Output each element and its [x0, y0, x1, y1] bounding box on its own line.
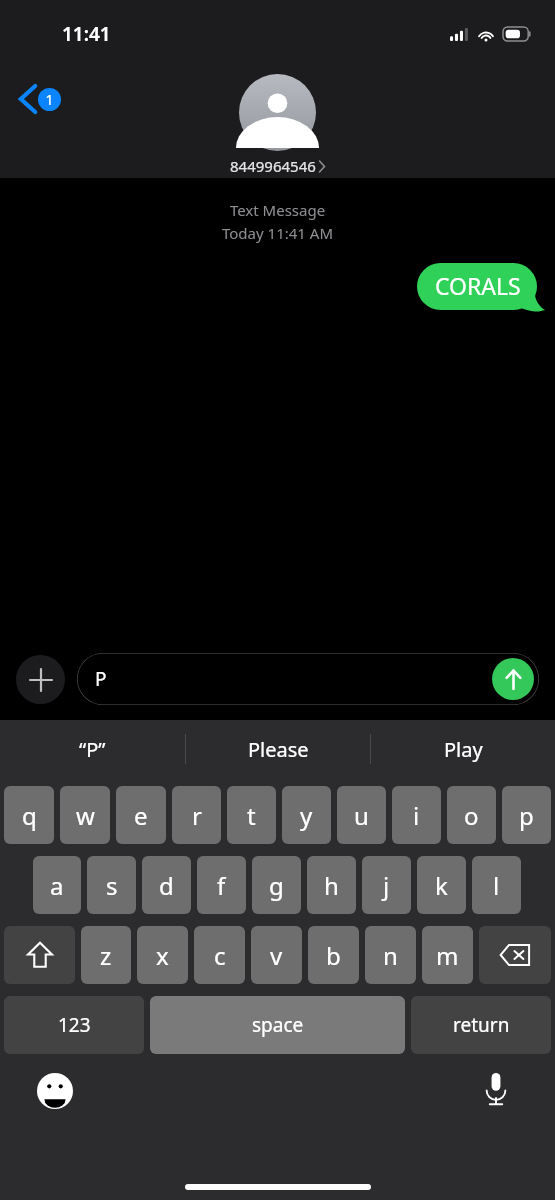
button[interactable]: x — [137, 926, 188, 984]
button[interactable]: 8449964546 — [230, 74, 325, 176]
staticText: j — [383, 869, 390, 902]
button[interactable]: Add attachment — [16, 655, 65, 704]
staticText: CORALS — [435, 270, 521, 301]
button[interactable]: h — [307, 856, 356, 914]
staticText: a — [50, 869, 64, 902]
button[interactable]: p — [502, 786, 551, 844]
staticText: y — [300, 799, 313, 832]
button[interactable]: Shift — [4, 926, 75, 984]
button[interactable]: z — [81, 926, 131, 984]
button[interactable]: e — [116, 786, 166, 844]
button[interactable]: b — [308, 926, 359, 984]
staticText: v — [270, 939, 283, 972]
staticText: f — [217, 869, 226, 902]
button[interactable]: l — [472, 856, 521, 914]
button[interactable]: y — [282, 786, 331, 844]
staticText: s — [106, 869, 118, 902]
button[interactable]: space — [150, 996, 405, 1054]
staticText: Please — [248, 736, 309, 763]
button[interactable]: j — [362, 856, 411, 914]
button[interactable]: r — [172, 786, 221, 844]
button[interactable]: v — [251, 926, 302, 984]
staticText: g — [269, 869, 284, 902]
button[interactable]: Send — [492, 658, 534, 700]
button[interactable]: g — [252, 856, 301, 914]
staticText: return — [453, 1012, 510, 1038]
staticText: t — [247, 799, 256, 832]
staticText: 8449964546 — [230, 156, 316, 176]
staticText: 1 — [45, 90, 54, 109]
staticText: u — [354, 799, 369, 832]
button[interactable]: f — [197, 856, 246, 914]
staticText: c — [214, 939, 226, 972]
staticText: Today 11:41 AM — [0, 223, 555, 243]
button[interactable]: d — [142, 856, 191, 914]
staticText: Text Message — [0, 200, 555, 220]
staticText: P — [95, 666, 107, 692]
staticText: b — [326, 939, 341, 972]
staticText: i — [413, 799, 420, 832]
button[interactable]: Emoji — [36, 1072, 74, 1110]
button[interactable]: u — [337, 786, 386, 844]
staticText: h — [324, 869, 339, 902]
button[interactable]: Backspace — [479, 926, 551, 984]
staticText: 11:41 — [62, 21, 111, 47]
button[interactable]: P — [77, 653, 539, 705]
staticText: q — [22, 799, 37, 832]
staticText: o — [464, 799, 479, 832]
button[interactable]: CORALS — [417, 263, 545, 310]
staticText: z — [100, 939, 112, 972]
staticText: Play — [444, 736, 483, 763]
button[interactable]: c — [194, 926, 245, 984]
staticText: x — [156, 939, 169, 972]
button[interactable]: Please — [186, 720, 370, 778]
button[interactable]: q — [4, 786, 54, 844]
staticText: “P” — [79, 736, 106, 763]
button[interactable]: “P” — [0, 720, 185, 778]
button[interactable]: n — [365, 926, 416, 984]
staticText: 123 — [58, 1012, 91, 1038]
button[interactable]: Back, 1 unread — [16, 82, 65, 116]
button[interactable]: return — [411, 996, 551, 1054]
button[interactable]: Dictation — [477, 1070, 515, 1108]
staticText: k — [435, 869, 448, 902]
button[interactable]: i — [392, 786, 441, 844]
staticText: r — [192, 799, 202, 832]
button[interactable]: Play — [371, 720, 555, 778]
staticText: p — [519, 799, 534, 832]
button[interactable]: k — [417, 856, 466, 914]
button[interactable]: 123 — [4, 996, 144, 1054]
button[interactable]: o — [447, 786, 496, 844]
staticText: m — [436, 939, 459, 972]
staticText: w — [76, 799, 95, 832]
staticText: space — [252, 1012, 304, 1038]
staticText: d — [159, 869, 174, 902]
staticText: n — [383, 939, 398, 972]
button[interactable]: m — [422, 926, 473, 984]
button[interactable]: w — [60, 786, 110, 844]
staticText: e — [134, 799, 148, 832]
button[interactable]: a — [33, 856, 81, 914]
button[interactable]: s — [87, 856, 136, 914]
button[interactable]: t — [227, 786, 276, 844]
staticText: l — [493, 869, 500, 902]
